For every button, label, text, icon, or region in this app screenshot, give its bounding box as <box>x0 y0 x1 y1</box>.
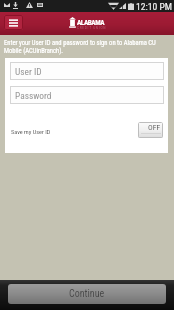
button[interactable]: User ID <box>10 62 164 80</box>
staticText: Enter your User ID and password to sign … <box>4 39 171 54</box>
staticText: Continue <box>69 288 105 300</box>
staticText: 12:10 PM <box>136 1 172 12</box>
staticText: User ID <box>15 66 42 77</box>
button[interactable]: Continue <box>8 284 166 304</box>
button[interactable]: Password <box>10 86 164 104</box>
staticText: CREDIT UNION <box>77 26 107 30</box>
button[interactable]: Open navigation menu <box>4 15 23 30</box>
staticText: OFF <box>148 123 161 132</box>
staticText: ALABAMA <box>77 18 105 26</box>
staticText: Password <box>15 90 52 101</box>
staticText: Save my User ID <box>11 128 51 135</box>
button[interactable]: Save my User ID toggle, off <box>138 122 163 138</box>
